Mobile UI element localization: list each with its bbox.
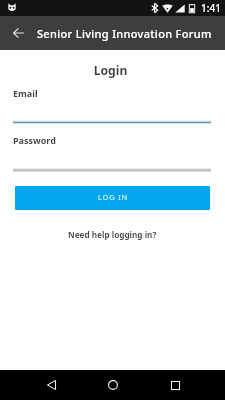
staticText: Email (13, 87, 38, 99)
staticText: Login (0, 62, 223, 79)
button[interactable]: Back (36, 370, 66, 400)
staticText: Senior Living Innovation Forum (37, 26, 212, 41)
staticText: Need help logging in? (68, 229, 157, 240)
button[interactable]: LOG IN (15, 186, 210, 210)
staticText: Password (13, 134, 56, 146)
button[interactable]: Home (98, 370, 128, 400)
button[interactable]: Back (0, 16, 36, 50)
button[interactable]: Recents (160, 370, 190, 400)
button[interactable]: Need help logging in? (58, 225, 167, 244)
staticText: LOG IN (98, 192, 129, 202)
staticText: 1:41 (201, 1, 221, 15)
